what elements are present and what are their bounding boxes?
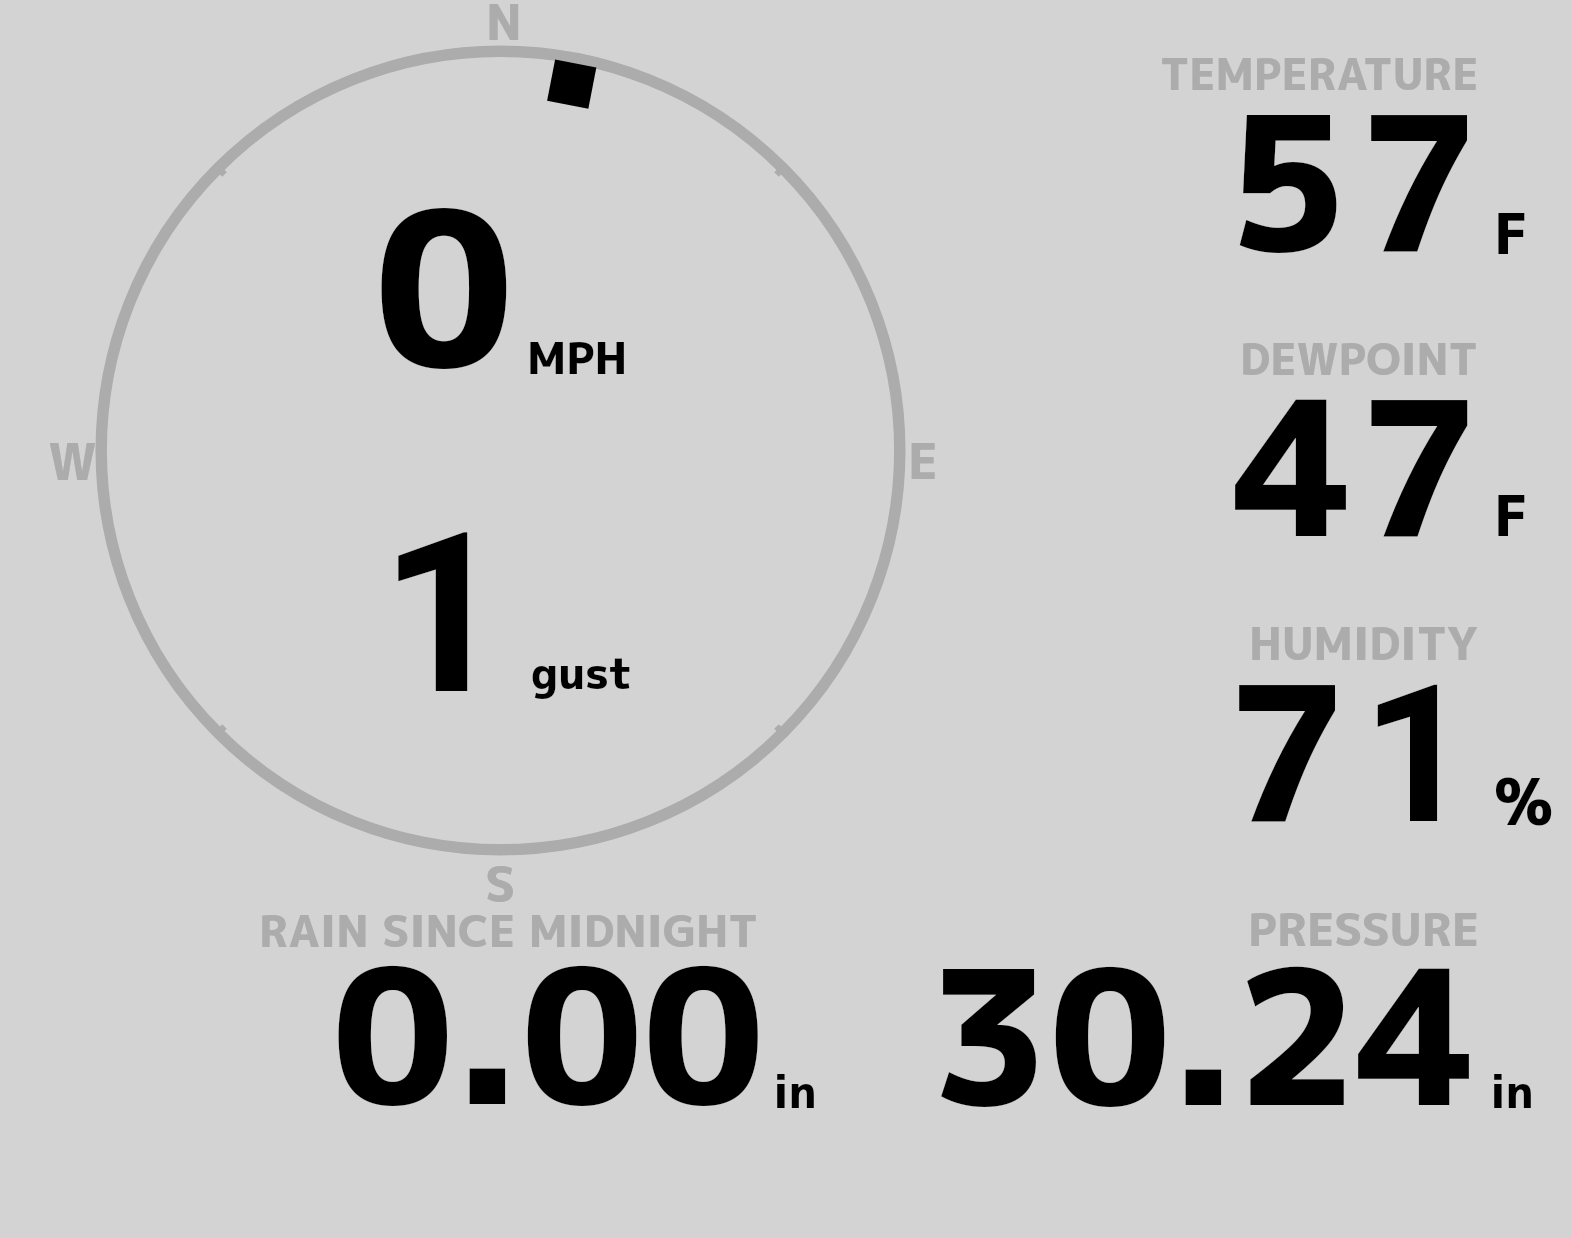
button[interactable]: Wind direction compass, wind from north: [40, 0, 970, 906]
button[interactable]: Wind gust 1 mile per hour: [375, 510, 660, 710]
staticText: F: [1494, 193, 1528, 273]
staticText: DEWPOINT: [1240, 329, 1478, 389]
staticText: %: [1494, 757, 1554, 845]
staticText: 47: [1233, 335, 1484, 596]
staticText: 7: [1226, 620, 1348, 881]
staticText: 0.00: [332, 903, 765, 1164]
button[interactable]: DEWPOINT 47 F: [1180, 323, 1571, 561]
staticText: 1: [1362, 643, 1473, 868]
staticText: W: [48, 426, 97, 496]
button[interactable]: Humidity 71 percent: [1215, 606, 1571, 838]
staticText: N: [486, 0, 522, 55]
staticText: gust: [531, 642, 633, 703]
staticText: F: [1494, 475, 1528, 555]
staticText: 57: [1227, 50, 1489, 311]
staticText: 0: [374, 136, 514, 436]
button[interactable]: TEMPERATURE 57 F: [1180, 38, 1571, 276]
staticText: in: [773, 1060, 817, 1123]
button[interactable]: Wind speed 0 miles per hour: [360, 185, 660, 390]
staticText: E: [908, 426, 938, 494]
staticText: TEMPERATURE: [1160, 44, 1479, 104]
staticText: in: [1490, 1060, 1534, 1123]
staticText: PRESSURE: [1248, 898, 1480, 961]
staticText: S: [485, 850, 516, 917]
staticText: 30.24: [929, 904, 1477, 1165]
staticText: RAIN SINCE MIDNIGHT: [259, 900, 759, 961]
staticText: 1: [380, 484, 508, 745]
button[interactable]: Rain since midnight 0.00 inches: [250, 892, 835, 1122]
staticText: MPH: [527, 327, 628, 388]
staticText: HUMIDITY: [1249, 612, 1479, 674]
button[interactable]: Pressure 30.24 inches: [925, 890, 1571, 1122]
